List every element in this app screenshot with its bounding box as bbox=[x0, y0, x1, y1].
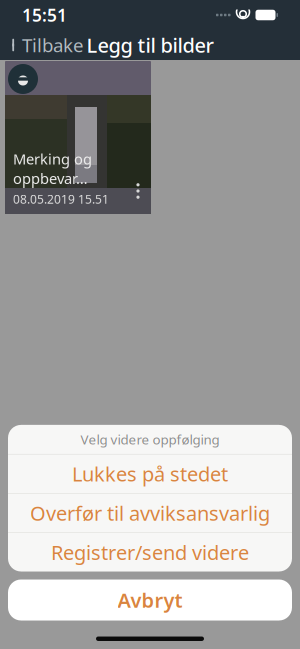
staticText: Overfør til avviksansvarlig bbox=[30, 500, 270, 526]
button[interactable]: Merking og oppbevar… bbox=[5, 61, 151, 214]
staticText: Velg videre oppfølging bbox=[80, 430, 219, 448]
staticText: Legg til bilder bbox=[86, 32, 213, 58]
button[interactable]: Flere valg bbox=[127, 175, 149, 207]
button[interactable]: Avbryt bbox=[8, 579, 292, 620]
button[interactable]: Tilbake bbox=[0, 30, 94, 60]
staticText: Registrer/send videre bbox=[51, 539, 249, 566]
button[interactable]: Lukkes på stedet bbox=[8, 455, 292, 493]
staticText: 08.05.2019 15.51 bbox=[13, 191, 109, 207]
button[interactable]: Registrer/send videre bbox=[8, 533, 292, 571]
staticText: Tilbake bbox=[22, 33, 84, 57]
staticText: Avbryt bbox=[117, 587, 182, 613]
staticText: Merking og oppbevar… bbox=[13, 149, 92, 188]
staticText: Lukkes på stedet bbox=[72, 461, 228, 487]
button[interactable]: Overfør til avviksansvarlig bbox=[8, 494, 292, 532]
staticText: 15:51 bbox=[22, 3, 67, 26]
